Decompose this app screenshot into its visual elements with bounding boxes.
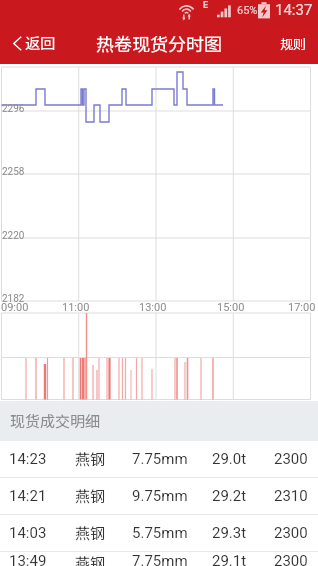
staticText: 热卷现货分时图	[96, 30, 222, 56]
staticText: 燕钢	[75, 522, 106, 544]
staticText: 14:21	[9, 487, 47, 505]
staticText: 17:00	[288, 301, 316, 314]
staticText: 燕钢	[75, 448, 106, 470]
staticText: 现货成交明细	[10, 410, 101, 432]
staticText: 2300	[274, 450, 308, 468]
button[interactable]: 14:21	[0, 478, 318, 514]
staticText: E	[203, 0, 209, 11]
staticText: 燕钢	[75, 552, 106, 566]
staticText: 2258	[2, 166, 25, 178]
staticText: 9.75mm	[132, 487, 188, 505]
staticText: 13:49	[9, 552, 47, 566]
button[interactable]: 14:23	[0, 441, 318, 477]
staticText: 返回	[25, 32, 56, 54]
staticText: 燕钢	[75, 485, 106, 507]
staticText: 29.2t	[212, 487, 247, 505]
button[interactable]: 14:03	[0, 515, 318, 551]
staticText: 29.1t	[212, 552, 247, 566]
staticText: 2182	[2, 293, 25, 305]
button[interactable]: 13:49	[0, 552, 318, 566]
button[interactable]: 返回	[0, 22, 66, 64]
staticText: 15:00	[217, 301, 245, 314]
staticText: 09:00	[1, 301, 29, 314]
staticText: 29.3t	[212, 524, 247, 542]
staticText: 7.75mm	[132, 552, 188, 566]
button[interactable]: 规则	[269, 22, 318, 64]
staticText: 规则	[280, 34, 307, 52]
staticText: 14:03	[9, 524, 47, 542]
staticText: 29.0t	[212, 450, 247, 468]
staticText: 2300	[274, 552, 308, 566]
staticText: 2296	[2, 103, 25, 115]
staticText: 13:00	[139, 301, 167, 314]
staticText: 14:37	[275, 1, 313, 19]
staticText: 7.75mm	[132, 450, 188, 468]
staticText: 2300	[274, 524, 308, 542]
staticText: 65%	[237, 4, 258, 17]
staticText: 2310	[274, 487, 308, 505]
staticText: 5.75mm	[132, 524, 188, 542]
staticText: 2220	[2, 230, 25, 242]
staticText: 14:23	[9, 450, 47, 468]
staticText: 11:00	[62, 301, 90, 314]
